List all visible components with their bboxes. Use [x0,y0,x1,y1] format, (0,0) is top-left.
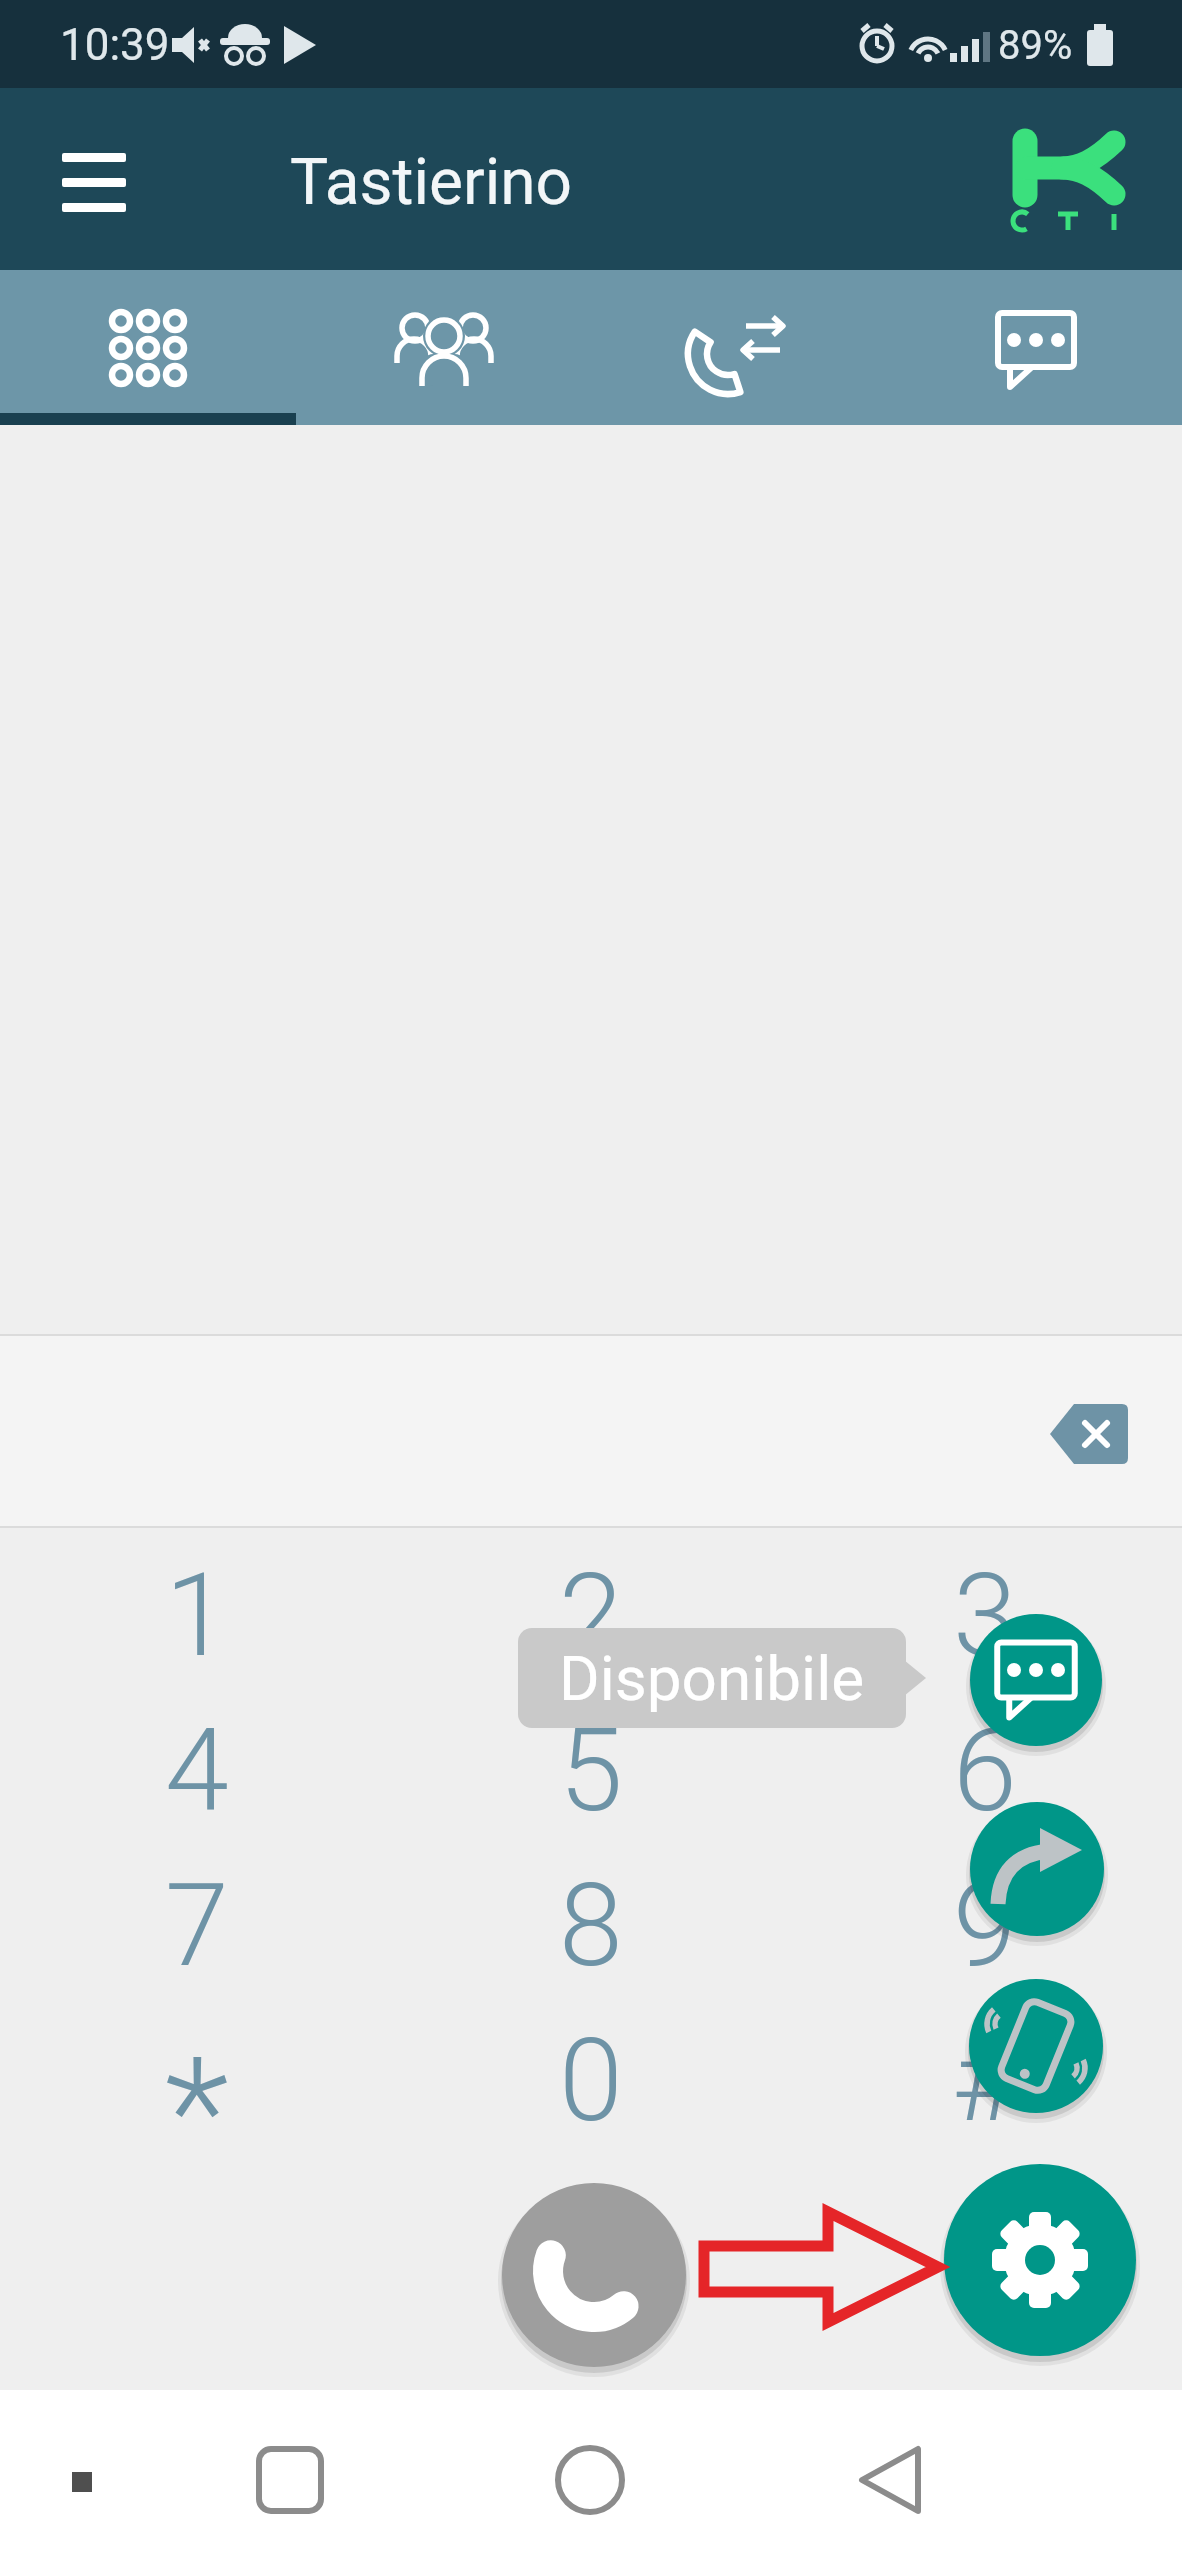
button[interactable] [0,270,296,425]
staticText: 5 [559,1703,623,1838]
button[interactable] [592,270,888,425]
staticText: 89% [998,22,1073,69]
staticText: 3 [953,1548,1017,1683]
button[interactable] [970,1614,1102,1746]
button[interactable] [48,138,143,228]
button[interactable]: 0 [394,2003,788,2158]
button[interactable]: # [788,2003,1182,2158]
button[interactable] [846,2436,934,2524]
staticText: Tastierino [290,145,573,220]
button[interactable] [970,1802,1104,1936]
staticText: 4 [165,1703,229,1838]
button[interactable] [888,270,1182,425]
staticText: * [165,2025,229,2180]
staticText: Disponibile [559,1642,865,1715]
staticText: 6 [953,1703,1017,1838]
button[interactable] [969,1979,1103,2113]
button[interactable]: 9 [788,1848,1182,2003]
staticText: 1 [165,1548,229,1683]
button[interactable]: 2 [394,1538,788,1693]
button[interactable] [502,2183,686,2367]
button[interactable]: 1 [0,1538,394,1693]
button[interactable]: 7 [0,1848,394,2003]
staticText: 9 [953,1858,1017,1993]
button[interactable] [1030,1385,1150,1485]
button[interactable] [246,2436,334,2524]
button[interactable]: 3 [788,1538,1182,1693]
button[interactable] [944,2164,1136,2356]
button[interactable]: * [0,2003,394,2158]
staticText: 0 [559,2013,623,2148]
button[interactable] [546,2436,634,2524]
button[interactable]: 8 [394,1848,788,2003]
staticText: 10:39 [60,19,170,71]
staticText: 2 [559,1548,623,1683]
button[interactable] [296,270,592,425]
staticText: 8 [559,1858,623,1993]
button[interactable] [62,2462,102,2502]
staticText: # [952,2013,1019,2148]
button[interactable]: 4 [0,1693,394,1848]
staticText: 7 [165,1858,229,1993]
button[interactable]: 5 [394,1693,788,1848]
button[interactable]: 6 [788,1693,1182,1848]
